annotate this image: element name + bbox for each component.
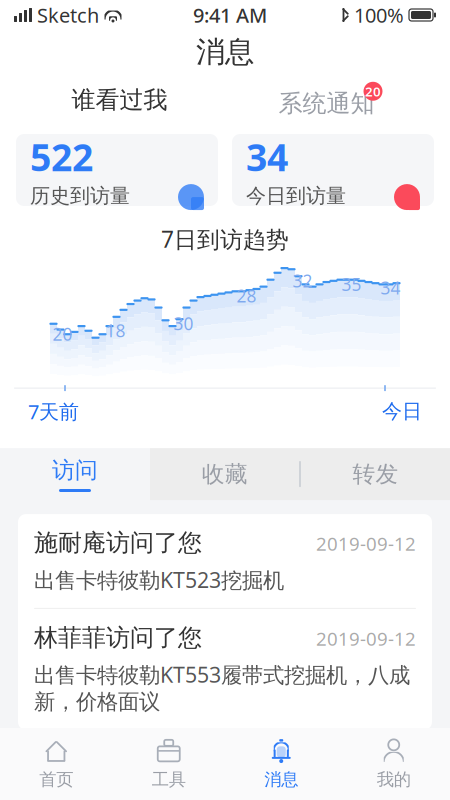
staticText: 消息 <box>264 769 298 790</box>
staticText: 30 <box>173 312 193 335</box>
staticText: 2019-09-12 <box>316 626 416 651</box>
staticText: 访问 <box>52 456 98 484</box>
staticText: 35 <box>341 273 361 296</box>
staticText: 34 <box>380 276 400 299</box>
staticText: 今日 <box>382 399 422 424</box>
staticText: 100% <box>354 2 404 28</box>
staticText: 32 <box>292 269 312 292</box>
button[interactable]: 谁看过我 <box>14 78 225 122</box>
button[interactable]: 34 <box>232 134 434 206</box>
staticText: 我的 <box>377 769 411 790</box>
staticText: 7天前 <box>28 398 79 425</box>
staticText: 收藏 <box>202 460 248 488</box>
staticText: 522 <box>30 132 93 181</box>
staticText: 出售卡特彼勒KT523挖掘机 <box>34 566 284 594</box>
staticText: Sketch <box>37 2 99 28</box>
button[interactable]: 施耐庵访问了您 <box>18 514 432 609</box>
staticText: 历史到访量 <box>30 183 130 208</box>
staticText: 20 <box>52 323 72 346</box>
staticText: 9:41 AM <box>193 2 267 28</box>
staticText: 34 <box>246 132 288 181</box>
staticText: 首页 <box>39 769 73 790</box>
button[interactable]: 522 <box>16 134 218 206</box>
button[interactable]: 我的 <box>337 728 450 800</box>
button[interactable]: 系统通知 <box>225 78 436 122</box>
staticText: 转发 <box>352 460 398 488</box>
staticText: 消息 <box>196 34 254 70</box>
button[interactable]: 转发 <box>301 448 450 500</box>
staticText: 20 <box>365 82 381 100</box>
button[interactable]: 访问 <box>0 448 150 500</box>
staticText: 出售卡特彼勒KT553履带式挖掘机，八成新，价格面议 <box>34 660 410 715</box>
button[interactable]: 收藏 <box>150 448 299 500</box>
staticText: 18 <box>105 319 125 342</box>
staticText: 系统通知 <box>278 89 374 118</box>
staticText: 施耐庵访问了您 <box>34 528 202 558</box>
staticText: 林菲菲访问了您 <box>34 623 202 652</box>
staticText: 工具 <box>152 769 186 790</box>
button[interactable]: 消息 <box>225 728 337 800</box>
button[interactable]: 首页 <box>0 728 112 800</box>
button[interactable]: 林菲菲访问了您 <box>18 609 432 730</box>
staticText: 2019-09-12 <box>316 531 416 556</box>
staticText: 7日到访趋势 <box>161 224 289 254</box>
staticText: 28 <box>236 284 256 307</box>
button[interactable]: 工具 <box>112 728 225 800</box>
staticText: 今日到访量 <box>246 183 346 208</box>
staticText: 谁看过我 <box>71 85 167 115</box>
